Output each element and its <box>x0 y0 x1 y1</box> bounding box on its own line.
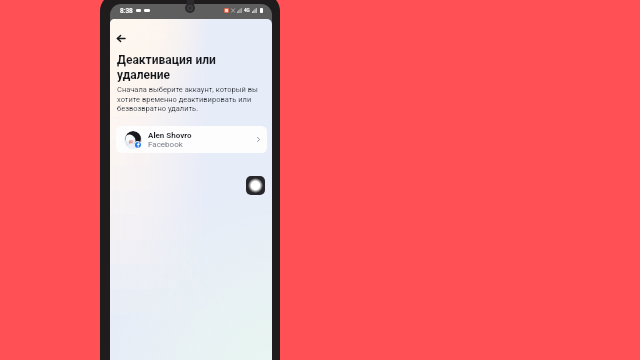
staticText: Facebook <box>148 140 183 149</box>
button[interactable]: Alen Shovro <box>116 126 267 153</box>
button[interactable]: Back <box>114 31 128 45</box>
staticText: Деактивация или удаление <box>117 53 267 82</box>
staticText: Alen Shovro <box>148 131 192 140</box>
staticText: 4G <box>244 8 250 13</box>
staticText: Сначала выберите аккаунт, который вы хот… <box>117 85 267 112</box>
button[interactable]: Cursor <box>246 176 265 195</box>
staticText: 8:38 <box>120 7 133 15</box>
